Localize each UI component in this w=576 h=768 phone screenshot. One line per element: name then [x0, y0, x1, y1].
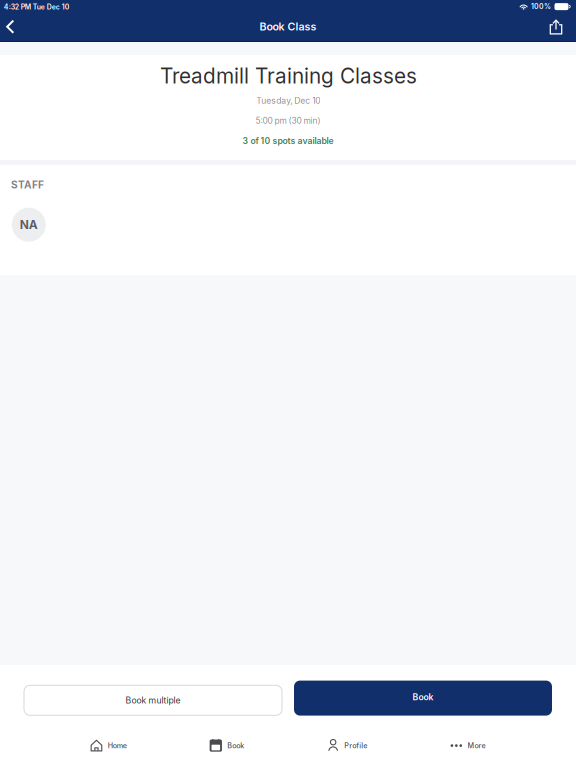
staticText: 3 of 10 spots available: [243, 136, 334, 146]
staticText: Treadmill Training Classes: [160, 63, 417, 89]
staticText: 5:00 pm (30 min): [255, 115, 320, 126]
staticText: Profile: [344, 741, 367, 750]
button[interactable]: Back: [0, 13, 27, 40]
staticText: Book: [412, 692, 433, 702]
button[interactable]: More: [409, 724, 527, 767]
staticText: Book multiple: [125, 695, 180, 706]
staticText: NA: [20, 217, 38, 232]
staticText: 4:32 PM Tue Dec 10: [4, 3, 70, 11]
button[interactable]: Book: [294, 681, 552, 716]
button[interactable]: Home: [49, 724, 168, 767]
button[interactable]: Book multiple: [24, 685, 282, 715]
staticText: Book Class: [259, 20, 316, 33]
staticText: Home: [108, 741, 127, 750]
button[interactable]: Share: [537, 13, 575, 40]
staticText: More: [468, 741, 486, 750]
staticText: Book: [227, 741, 244, 750]
button[interactable]: Profile: [286, 724, 409, 767]
button[interactable]: Book: [168, 724, 286, 767]
staticText: STAFF: [11, 179, 44, 191]
staticText: Tuesday, Dec 10: [256, 95, 320, 106]
staticText: 100%: [531, 2, 551, 11]
